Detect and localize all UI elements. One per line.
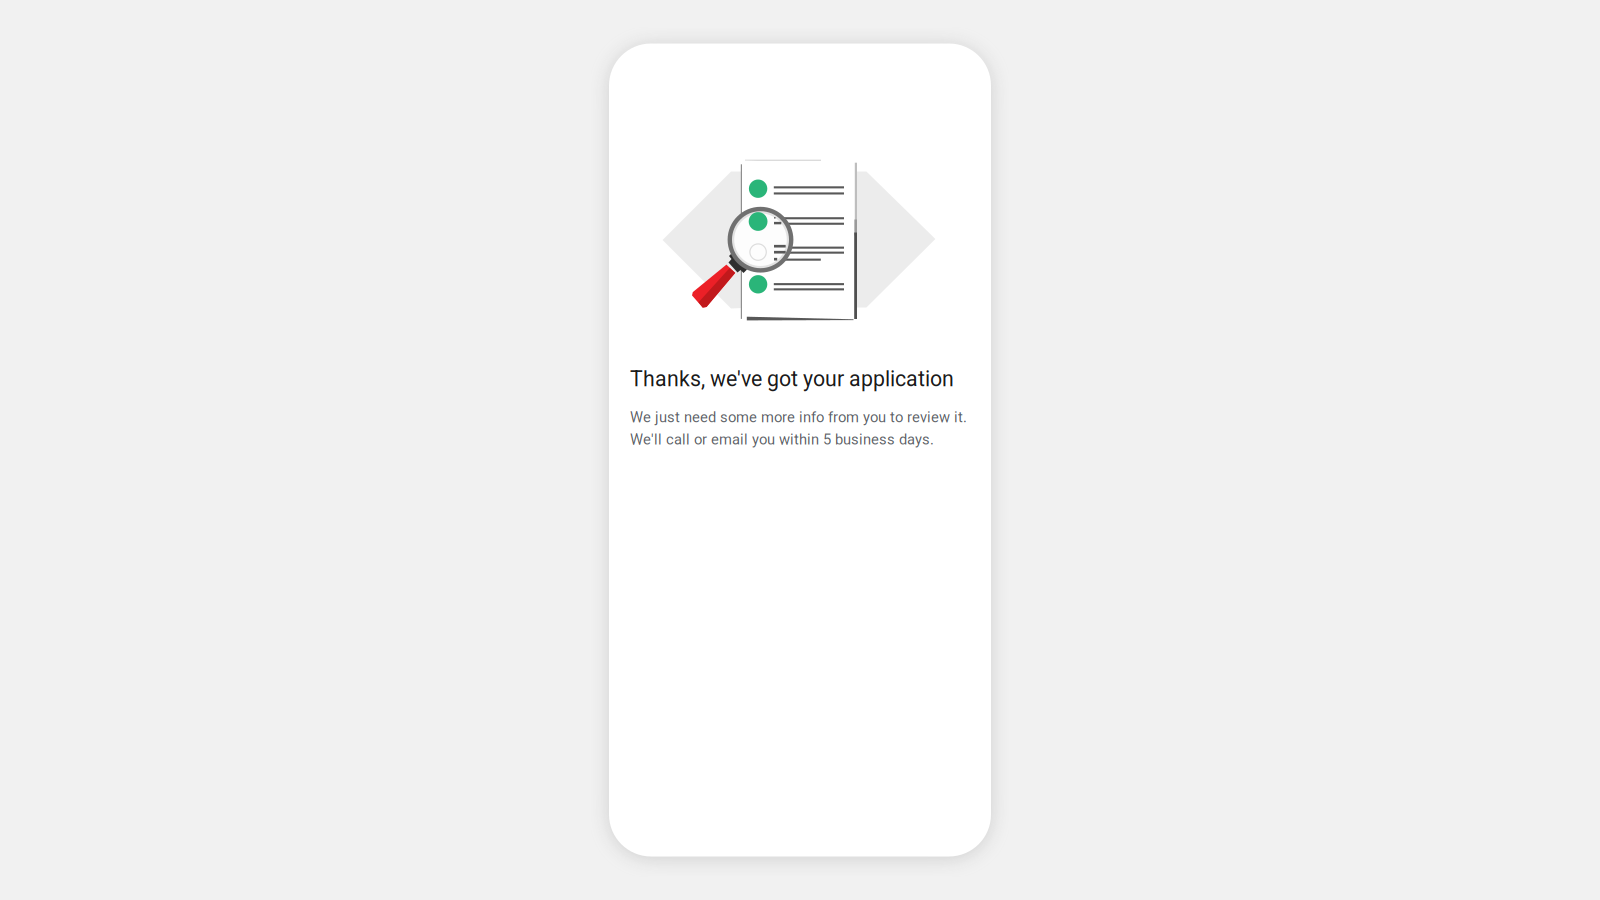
staticText: We'll call or email you within 5 busines… [630,431,934,448]
staticText: We just need some more info from you to … [630,408,967,426]
staticText: Thanks, we've got your application [630,366,954,391]
